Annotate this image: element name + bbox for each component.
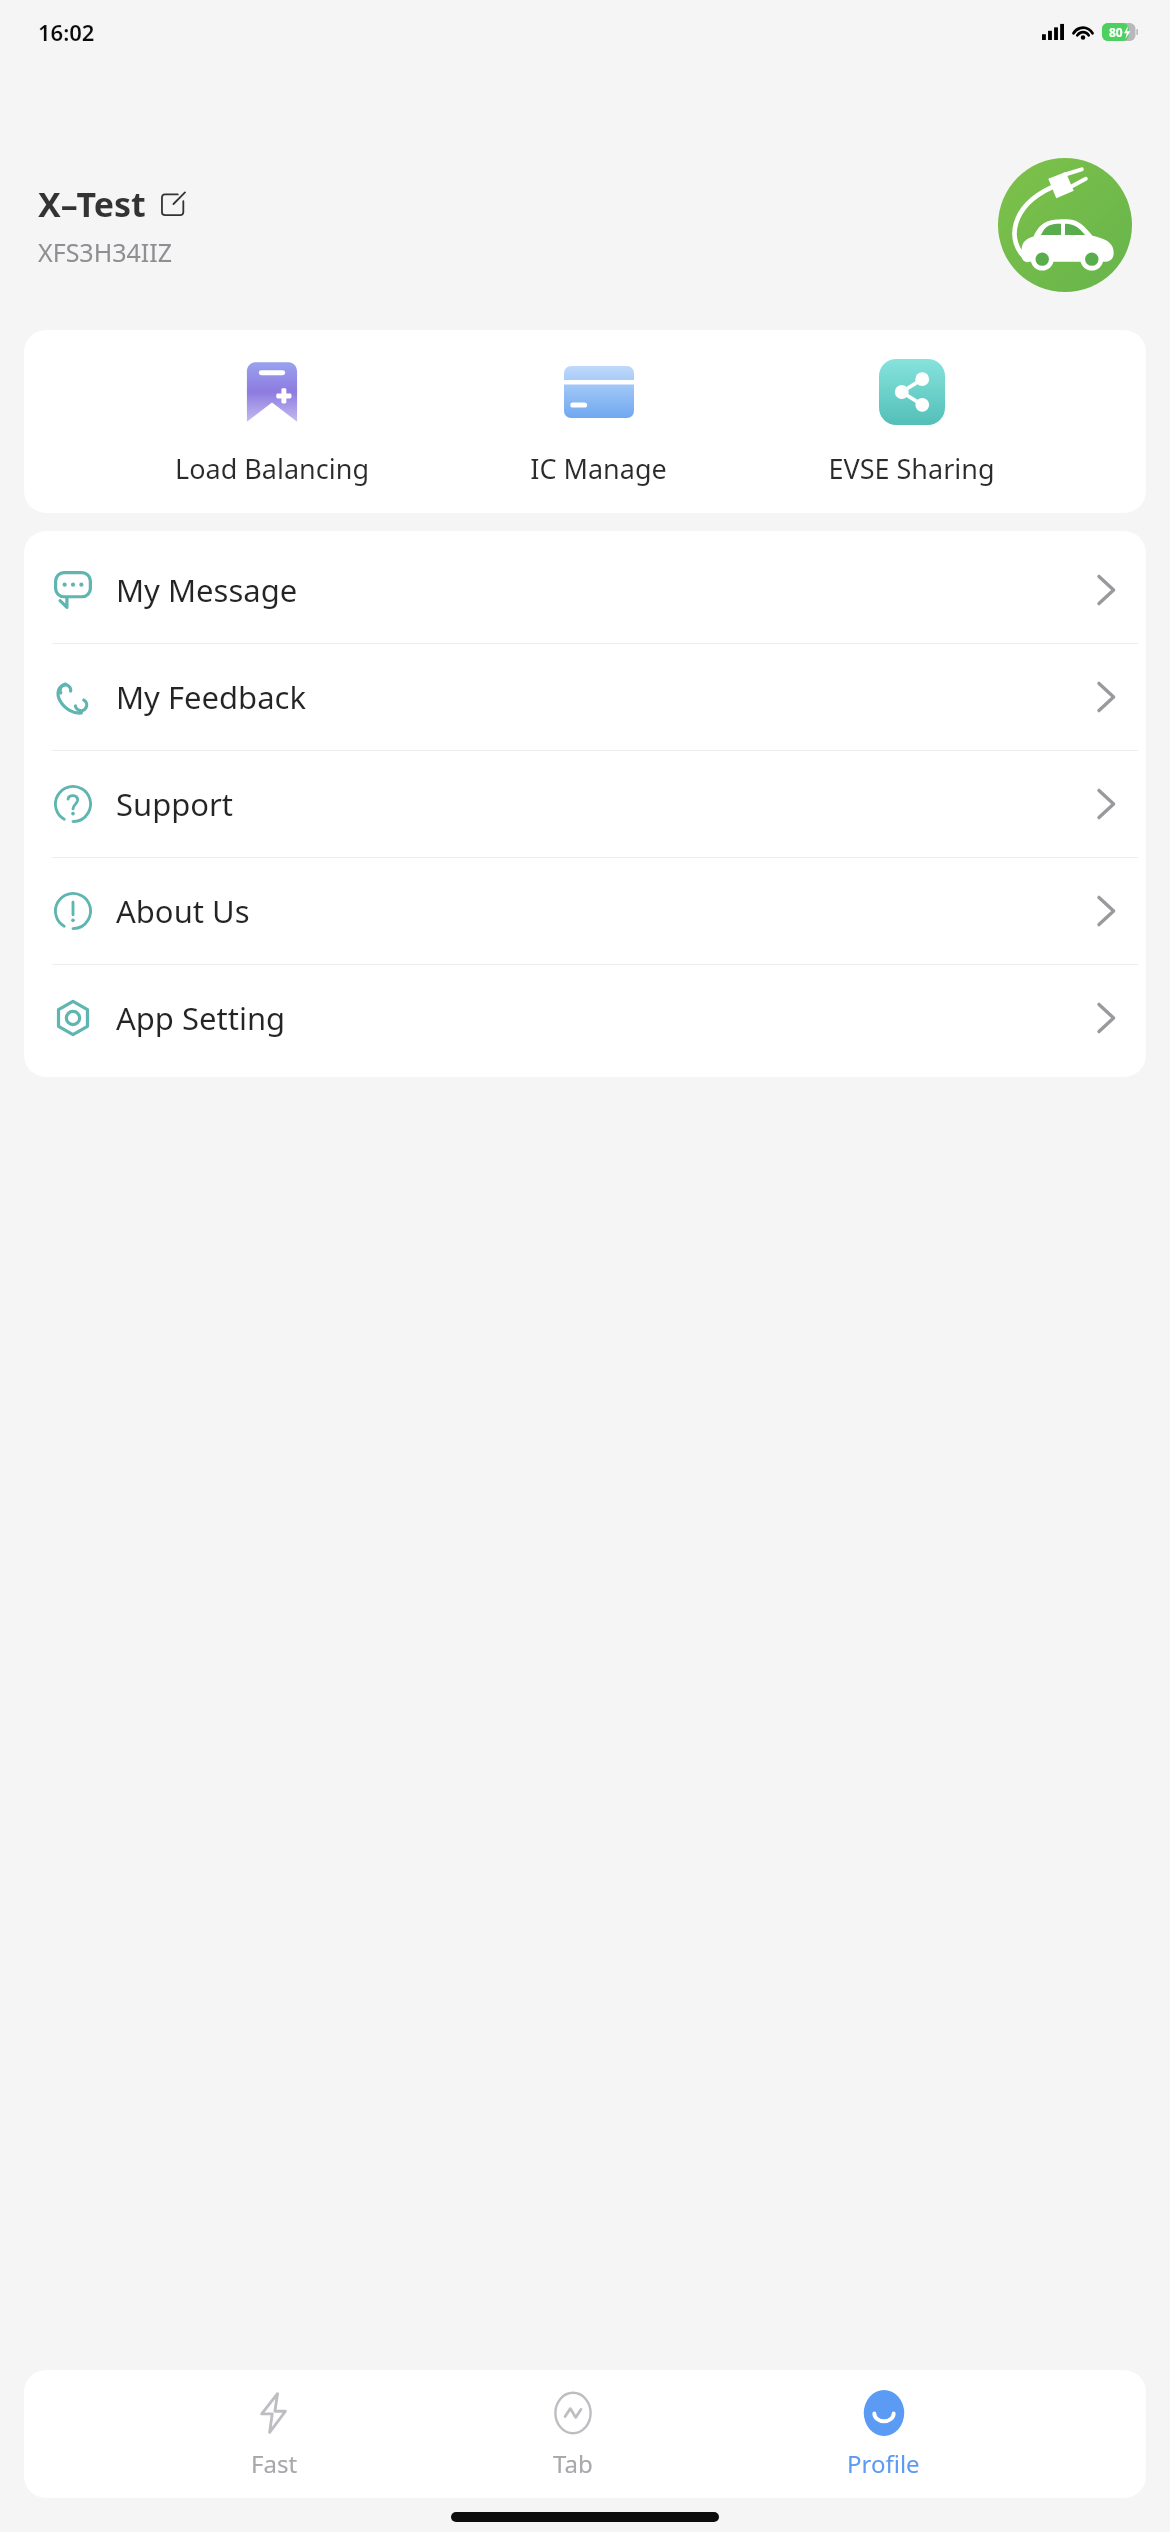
staticText: My Feedback [116,676,1096,718]
staticText: 16:02 [38,17,95,47]
button[interactable]: IC Manage [520,352,677,491]
button[interactable]: My Message [24,537,1146,643]
button[interactable]: About Us [24,858,1146,964]
button[interactable]: Tab [525,2383,621,2486]
button[interactable]: EVSE Sharing [818,352,1005,491]
button[interactable]: Fast [226,2383,322,2486]
button[interactable]: Load Balancing [165,352,379,491]
staticText: Profile [847,2447,920,2480]
button[interactable]: Profile avatar [998,158,1132,292]
staticText: Load Balancing [175,450,369,487]
staticText: Tab [553,2447,593,2480]
button[interactable]: Profile [823,2383,944,2486]
button[interactable]: Support [24,751,1146,857]
staticText: IC Manage [530,450,667,487]
staticText: EVSE Sharing [828,450,995,487]
staticText: 80 [1109,24,1123,40]
button[interactable]: App Setting [24,965,1146,1071]
staticText: App Setting [116,997,1096,1039]
button[interactable]: My Feedback [24,644,1146,750]
staticText: About Us [116,890,1096,932]
staticText: Fast [251,2447,298,2480]
staticText: My Message [116,569,1096,611]
staticText: Support [116,783,1096,825]
staticText: XFS3H34IIZ [38,235,173,269]
staticText: X–Test [38,181,146,227]
button[interactable]: Edit name [158,189,188,219]
